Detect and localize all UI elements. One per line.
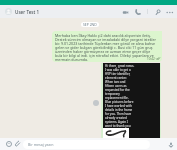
staticText: User Test 1 xyxy=(15,9,40,15)
button[interactable]: More options xyxy=(164,6,176,18)
staticText: SEP 2ND xyxy=(83,22,97,27)
button[interactable]: Bir mesaj yazın xyxy=(23,140,150,149)
button[interactable]: Record voice message xyxy=(166,140,175,149)
staticText: 10:42 xyxy=(147,57,155,61)
button[interactable]: SEP 2ND xyxy=(83,22,97,27)
button[interactable]: Emoji xyxy=(5,140,13,148)
button[interactable]: Voice call xyxy=(132,6,144,18)
button[interactable]: Contact avatar xyxy=(5,8,12,15)
button[interactable]: Scroll to bottom xyxy=(93,100,99,106)
button[interactable]: Merhaba ben İlkay Hakkı çi2 dahi aracılı… xyxy=(52,31,162,62)
button[interactable]: Search xyxy=(152,6,164,18)
button[interactable]: Video call xyxy=(120,6,132,18)
staticText: Bir mesaj yazın xyxy=(28,142,54,147)
button[interactable]: Attach file xyxy=(14,140,22,148)
staticText: Merhaba ben İlkay Hakkı çi2 dahi aracılı… xyxy=(55,33,158,62)
staticText: Hi there, great news. I was able to get … xyxy=(105,64,135,128)
